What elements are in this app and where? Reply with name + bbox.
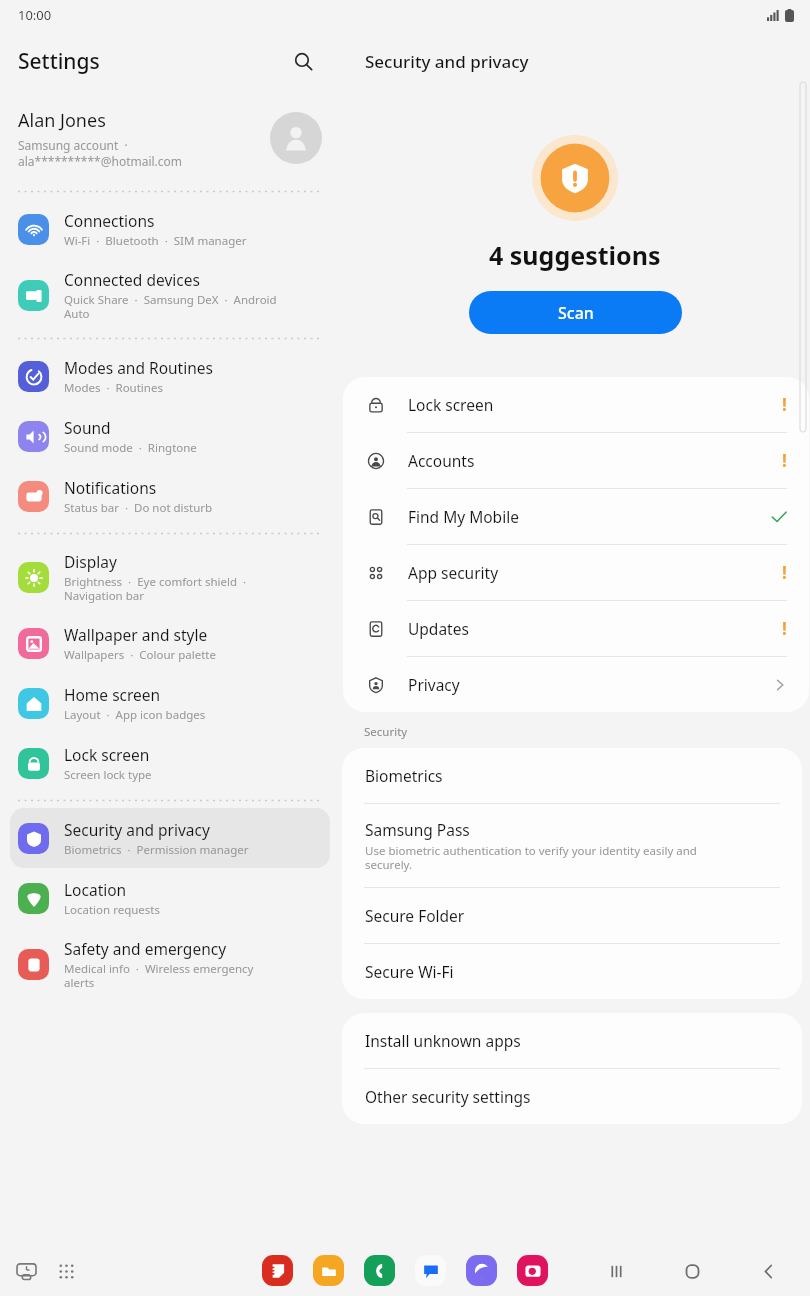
staticText: Samsung Pass: [365, 819, 470, 840]
staticText: Biometrics · Permission manager: [64, 842, 249, 858]
staticText: Medical info · Wireless emergency alerts: [64, 961, 254, 990]
button[interactable]: Secure Folder: [342, 888, 802, 943]
button[interactable]: Modes and Routines: [10, 346, 330, 406]
staticText: Display: [64, 551, 117, 572]
staticText: Home screen: [64, 684, 161, 705]
staticText: Modes · Routines: [64, 380, 163, 396]
button[interactable]: App security: [343, 545, 809, 600]
button[interactable]: Samsung Pass: [342, 804, 802, 887]
staticText: Lock screen: [408, 394, 782, 415]
button[interactable]: All apps: [52, 1257, 80, 1285]
staticText: App security: [408, 562, 782, 583]
button[interactable]: Recents: [596, 1251, 636, 1291]
staticText: Use biometric authentication to verify y…: [365, 843, 697, 872]
button[interactable]: Search: [286, 44, 320, 78]
staticText: Quick Share · Samsung DeX · Android Auto: [64, 292, 277, 321]
staticText: 10:00: [18, 6, 52, 24]
staticText: Location: [64, 879, 127, 900]
staticText: Find My Mobile: [408, 506, 771, 527]
button[interactable]: Recent apps: [12, 1257, 40, 1285]
staticText: Modes and Routines: [64, 357, 213, 378]
staticText: Sound: [64, 417, 111, 438]
button[interactable]: Connected devices: [10, 259, 330, 331]
button[interactable]: Install unknown apps: [342, 1013, 802, 1068]
staticText: Secure Folder: [365, 905, 465, 926]
staticText: Brightness · Eye comfort shield · Naviga…: [64, 574, 247, 603]
staticText: ala**********@hotmail.com: [18, 153, 183, 169]
button[interactable]: Alan Jones: [0, 92, 340, 184]
staticText: Lock screen: [64, 744, 150, 765]
staticText: Wallpaper and style: [64, 624, 208, 645]
button[interactable]: Notifications: [10, 466, 330, 526]
staticText: !: [782, 561, 787, 584]
staticText: Biometrics: [365, 765, 443, 786]
button[interactable]: Home: [672, 1251, 712, 1291]
button[interactable]: Lock screen: [343, 377, 809, 432]
button[interactable]: files: [313, 1255, 344, 1286]
button[interactable]: Lock screen: [10, 733, 330, 793]
staticText: !: [782, 393, 787, 416]
button[interactable]: msg: [415, 1255, 446, 1286]
staticText: 4 suggestions: [489, 238, 661, 272]
staticText: Location requests: [64, 902, 160, 918]
staticText: Other security settings: [365, 1086, 531, 1107]
staticText: Status bar · Do not disturb: [64, 500, 213, 516]
button[interactable]: Connections: [10, 199, 330, 259]
button[interactable]: Display: [10, 541, 330, 613]
button[interactable]: Sound: [10, 406, 330, 466]
button[interactable]: Privacy: [343, 657, 809, 712]
button[interactable]: Other security settings: [342, 1069, 802, 1124]
staticText: Connections: [64, 210, 155, 231]
staticText: Connected devices: [64, 269, 200, 290]
button[interactable]: Home screen: [10, 673, 330, 733]
staticText: Security and privacy: [365, 50, 529, 73]
button[interactable]: Accounts: [343, 433, 809, 488]
staticText: Updates: [408, 618, 782, 639]
button[interactable]: Back: [748, 1251, 788, 1291]
staticText: Samsung account ·: [18, 137, 128, 153]
staticText: Settings: [18, 47, 100, 76]
staticText: Safety and emergency: [64, 938, 227, 959]
staticText: Security and privacy: [64, 819, 210, 840]
staticText: Alan Jones: [18, 108, 106, 133]
button[interactable]: Find My Mobile: [343, 489, 809, 544]
staticText: Screen lock type: [64, 767, 152, 783]
staticText: Security: [364, 724, 408, 740]
staticText: Scan: [558, 302, 594, 324]
staticText: Install unknown apps: [365, 1030, 521, 1051]
staticText: Secure Wi-Fi: [365, 961, 454, 982]
staticText: Wi-Fi · Bluetooth · SIM manager: [64, 233, 247, 249]
button[interactable]: Secure Wi-Fi: [342, 944, 802, 999]
staticText: !: [782, 449, 787, 472]
button[interactable]: Biometrics: [342, 748, 802, 803]
staticText: Accounts: [408, 450, 782, 471]
button[interactable]: phone: [364, 1255, 395, 1286]
button[interactable]: Updates: [343, 601, 809, 656]
staticText: Layout · App icon badges: [64, 707, 206, 723]
button[interactable]: Scan: [469, 291, 682, 334]
button[interactable]: internet: [466, 1255, 497, 1286]
staticText: Privacy: [408, 674, 773, 695]
staticText: Notifications: [64, 477, 157, 498]
staticText: Wallpapers · Colour palette: [64, 647, 216, 663]
button[interactable]: camera: [517, 1255, 548, 1286]
button[interactable]: notes: [262, 1255, 293, 1286]
button[interactable]: Location: [10, 868, 330, 928]
button[interactable]: Security and privacy: [10, 808, 330, 868]
button[interactable]: Wallpaper and style: [10, 613, 330, 673]
staticText: !: [782, 617, 787, 640]
staticText: Sound mode · Ringtone: [64, 440, 197, 456]
button[interactable]: Safety and emergency: [10, 928, 330, 1000]
